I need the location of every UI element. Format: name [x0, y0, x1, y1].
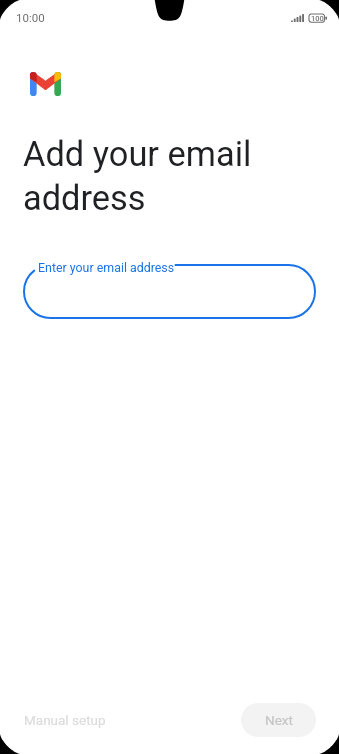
staticText: 100	[311, 14, 324, 23]
staticText: Next	[265, 712, 293, 728]
staticText: Add your email address	[23, 134, 252, 218]
button[interactable]: Next	[241, 703, 316, 737]
staticText: 10:00	[16, 11, 45, 24]
staticText: Manual setup	[24, 712, 106, 728]
button[interactable]: Manual setup	[22, 708, 108, 732]
staticText: Enter your email address	[38, 260, 175, 275]
